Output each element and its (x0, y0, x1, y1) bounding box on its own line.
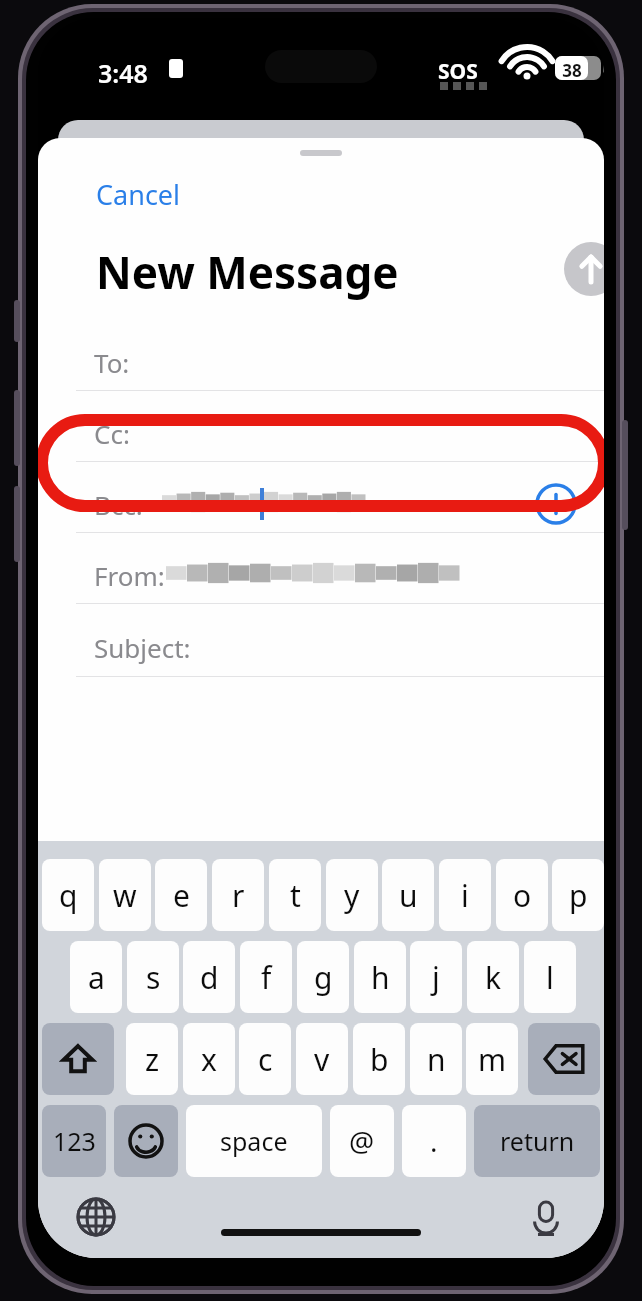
button[interactable]: Emoji (114, 1105, 178, 1177)
button[interactable]: f (240, 941, 292, 1013)
button[interactable]: y (326, 859, 378, 931)
staticText: l (546, 957, 554, 998)
staticText: . (430, 1122, 438, 1160)
staticText: return (500, 1124, 575, 1158)
staticText: o (513, 875, 532, 916)
staticText: f (261, 957, 272, 998)
button[interactable]: q (42, 859, 94, 931)
button[interactable]: space (186, 1105, 322, 1177)
staticText: From: (94, 558, 165, 593)
staticText: space (220, 1124, 288, 1158)
staticText: 38 (558, 59, 586, 82)
staticText: x (201, 1039, 217, 1080)
button[interactable]: c (239, 1023, 291, 1095)
staticText: d (200, 957, 219, 998)
staticText: @ (349, 1122, 375, 1160)
button[interactable]: Send (564, 242, 604, 296)
staticText: Cc: (94, 416, 130, 451)
staticText: s (146, 957, 161, 998)
button[interactable]: r (212, 859, 264, 931)
button[interactable]: k (467, 941, 519, 1013)
button[interactable]: Switch keyboard (74, 1195, 118, 1239)
button[interactable]: e (155, 859, 207, 931)
button[interactable]: t (269, 859, 321, 931)
button[interactable]: Cancel (78, 168, 199, 221)
button[interactable]: i (439, 859, 491, 931)
button[interactable]: @ (330, 1105, 394, 1177)
staticText: j (432, 957, 440, 998)
button[interactable]: v (296, 1023, 348, 1095)
staticText: New Message (96, 242, 399, 302)
button[interactable]: l (524, 941, 576, 1013)
button[interactable]: Subject: (38, 619, 604, 675)
button[interactable]: Add contact (534, 482, 578, 526)
staticText: n (427, 1039, 446, 1080)
button[interactable]: . (402, 1105, 466, 1177)
staticText: Bcc: (94, 487, 143, 522)
staticText: a (88, 957, 105, 998)
button[interactable]: From: (38, 547, 604, 603)
staticText: q (59, 875, 78, 916)
button[interactable]: Cc: (38, 405, 604, 461)
button[interactable]: m (466, 1023, 518, 1095)
button[interactable]: h (354, 941, 406, 1013)
staticText: h (371, 957, 390, 998)
staticText: k (485, 957, 502, 998)
staticText: To: (94, 345, 130, 380)
staticText: r (232, 875, 245, 916)
button[interactable]: n (410, 1023, 462, 1095)
staticText: 123 (53, 1124, 96, 1158)
button[interactable]: w (99, 859, 151, 931)
button[interactable]: Shift (42, 1023, 114, 1095)
staticText: i (461, 875, 469, 916)
staticText: SOS (438, 57, 478, 86)
button[interactable]: u (382, 859, 434, 931)
staticText: m (478, 1039, 507, 1080)
button[interactable]: b (353, 1023, 405, 1095)
button[interactable]: To: (38, 334, 604, 390)
button[interactable]: Backspace (528, 1023, 600, 1095)
button[interactable]: j (410, 941, 462, 1013)
button[interactable]: p (552, 859, 604, 931)
staticText: 3:48 (98, 56, 148, 90)
staticText: b (370, 1039, 389, 1080)
button[interactable]: a (70, 941, 122, 1013)
staticText: u (399, 875, 418, 916)
staticText: g (314, 957, 333, 998)
staticText: p (569, 875, 588, 916)
button[interactable]: o (496, 859, 548, 931)
button[interactable]: z (126, 1023, 178, 1095)
button[interactable]: s (127, 941, 179, 1013)
button[interactable]: d (183, 941, 235, 1013)
staticText: e (173, 875, 190, 916)
staticText: t (290, 875, 301, 916)
button[interactable]: g (297, 941, 349, 1013)
staticText: w (113, 875, 137, 916)
button[interactable]: Return (474, 1105, 600, 1177)
staticText: Cancel (96, 176, 181, 213)
button[interactable]: x (183, 1023, 235, 1095)
staticText: z (145, 1039, 160, 1080)
button[interactable]: Dictation (524, 1195, 568, 1239)
button[interactable]: Bcc: (38, 476, 604, 532)
staticText: y (344, 875, 360, 916)
staticText: Subject: (94, 630, 191, 665)
button[interactable]: Numbers (42, 1105, 106, 1177)
staticText: v (314, 1039, 330, 1080)
staticText: c (258, 1039, 273, 1080)
